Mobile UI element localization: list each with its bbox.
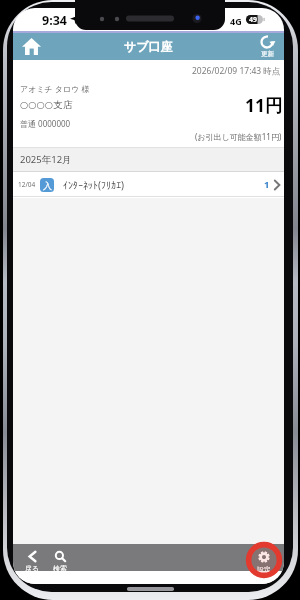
staticText: 更新 (261, 50, 274, 58)
button[interactable]: 検索 (45, 548, 75, 576)
staticText: 11円 (245, 93, 283, 117)
staticText: 2026/02/09 17:43 時点 (192, 65, 281, 77)
staticText: 9:34 (42, 12, 67, 29)
staticText: 49 (249, 15, 258, 24)
staticText: 1 (264, 178, 270, 191)
button[interactable]: 12/04 (13, 172, 284, 197)
staticText: アオミチ タロウ 様 (20, 83, 90, 94)
button[interactable] (18, 34, 45, 59)
staticText: サブ口座 (124, 39, 173, 54)
button[interactable]: 設定 (249, 548, 279, 576)
staticText: 入 (43, 180, 52, 191)
staticText: 戻る (25, 564, 40, 573)
button[interactable]: 更新 (253, 33, 283, 60)
staticText: ○○○○支店 (20, 99, 73, 111)
staticText: (お引出し可能金額11円) (195, 131, 282, 142)
staticText: 検索 (53, 564, 67, 573)
staticText: 2025年12月 (20, 153, 72, 166)
staticText: 設定 (257, 565, 271, 574)
staticText: 4G (230, 15, 242, 27)
staticText: ｲﾝﾀｰﾈｯﾄ(ﾌﾘｶｴ) (63, 178, 124, 192)
staticText: 12/04 (18, 180, 36, 189)
staticText: 普通 0000000 (20, 118, 71, 129)
button[interactable]: 戻る (17, 548, 47, 576)
